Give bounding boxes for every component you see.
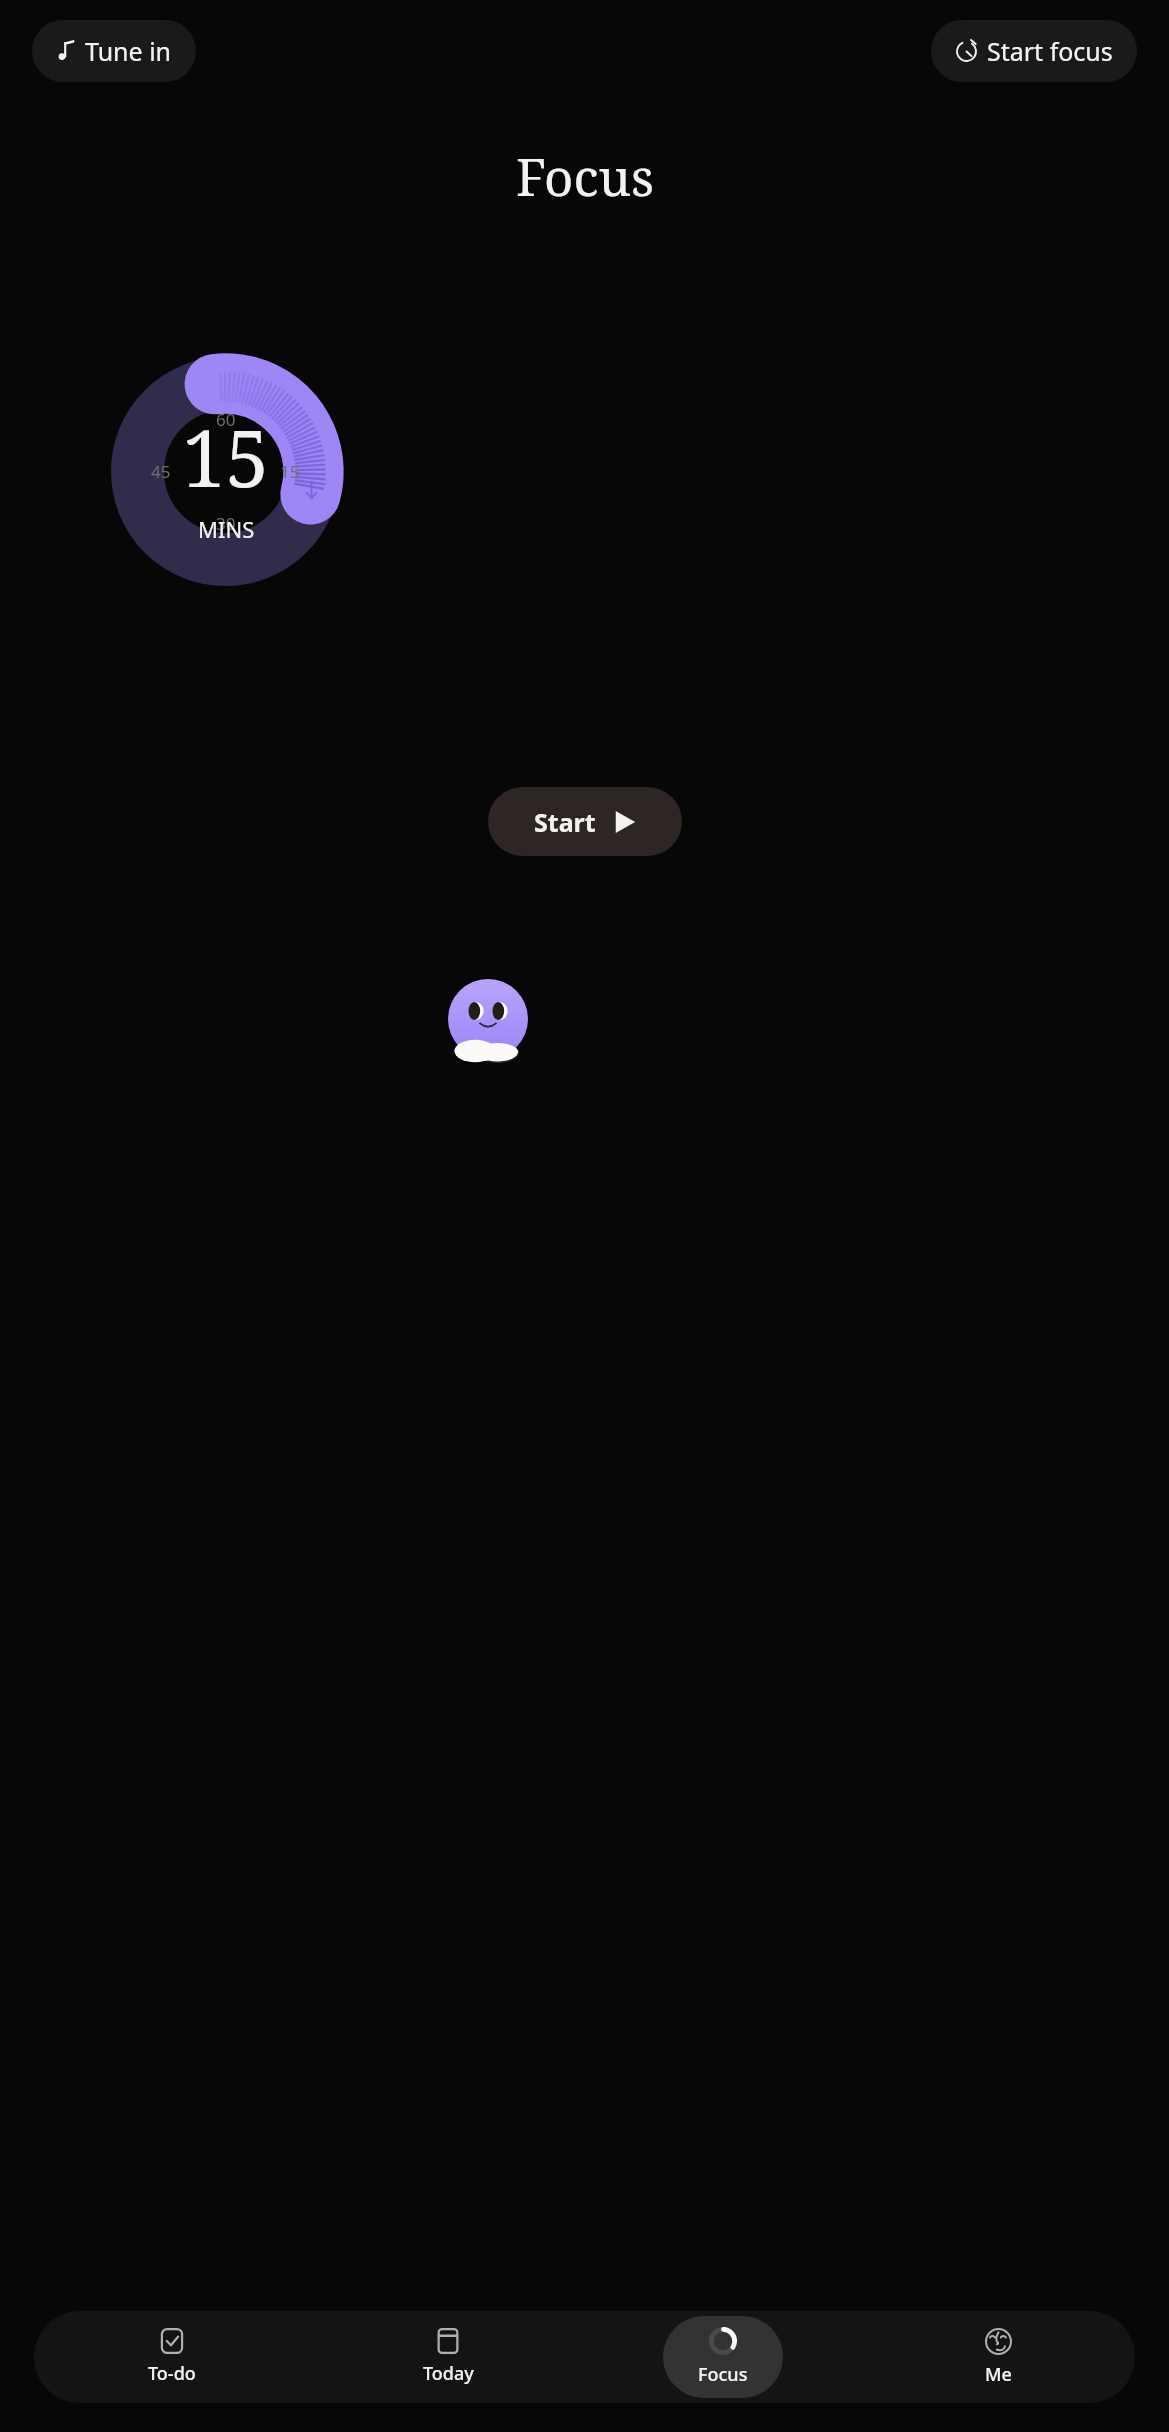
staticText: 60	[216, 408, 236, 431]
staticText: To-do	[148, 2361, 196, 2386]
staticText: Today	[423, 2361, 474, 2386]
button[interactable]: Assistant avatar	[448, 979, 528, 1059]
staticText: 45	[151, 460, 171, 483]
button[interactable]: Today	[388, 2316, 508, 2398]
staticText: Start	[534, 805, 596, 839]
staticText: MINS	[198, 514, 255, 544]
button[interactable]: Start focus	[931, 20, 1137, 82]
staticText: 15	[182, 404, 270, 510]
staticText: Tune in	[85, 34, 172, 68]
staticText: 15	[280, 460, 300, 483]
staticText: Focus	[698, 2362, 748, 2387]
button[interactable]: Tune in	[32, 20, 196, 82]
button[interactable]: Start	[488, 787, 682, 856]
staticText: Me	[985, 2362, 1012, 2387]
button[interactable]: Focus	[663, 2316, 783, 2398]
button[interactable]: To-do	[112, 2316, 232, 2398]
staticText: Start focus	[987, 34, 1113, 68]
button[interactable]: Me	[938, 2316, 1058, 2398]
staticText: Focus	[516, 141, 654, 210]
staticText: 30	[216, 512, 236, 535]
